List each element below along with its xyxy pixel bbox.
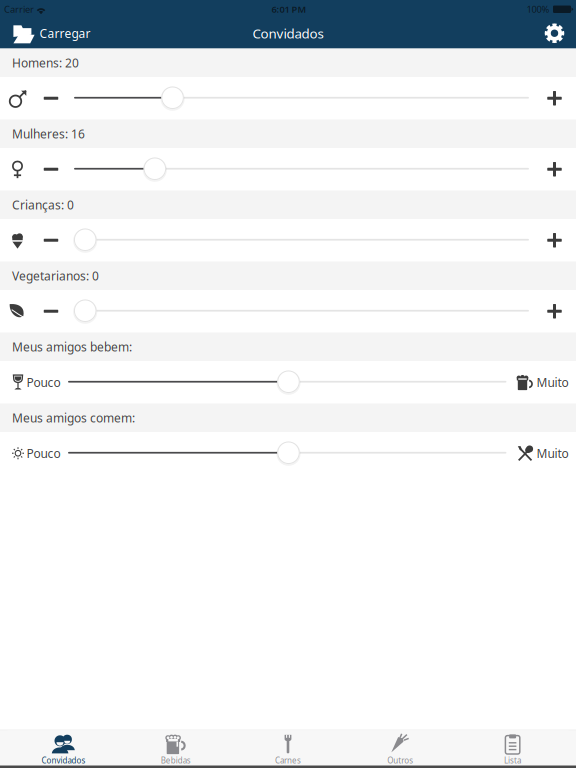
staticText: Meus amigos bebem: (12, 339, 132, 355)
staticText: 6:01 PM (271, 3, 306, 15)
button[interactable]: Decrease Vegetarianos (34, 294, 68, 328)
button[interactable]: Bebidas (119, 730, 232, 765)
button[interactable]: Lista (456, 730, 569, 765)
button[interactable]: Decrease Homens (34, 81, 68, 115)
staticText: 100% (526, 3, 549, 15)
button[interactable]: Increase Mulheres (537, 152, 571, 186)
staticText: Convidados (252, 24, 323, 42)
staticText: Bebidas (161, 755, 191, 766)
staticText: Mulheres: 16 (12, 126, 85, 142)
staticText: Lista (504, 755, 521, 766)
button[interactable]: Convidados (7, 730, 119, 765)
staticText: Outros (387, 755, 413, 766)
button[interactable]: Increase Crianças (537, 223, 571, 257)
staticText: Carrier (4, 3, 34, 15)
button[interactable]: Increase Homens (537, 81, 571, 115)
staticText: Vegetarianos: 0 (12, 268, 99, 284)
button[interactable]: Decrease Crianças (34, 223, 68, 257)
button[interactable]: Settings (537, 18, 571, 48)
button[interactable]: Carnes (232, 730, 344, 765)
staticText: Meus amigos comem: (12, 410, 135, 426)
staticText: Muito (536, 374, 568, 390)
staticText: Pouco (26, 445, 60, 461)
staticText: Carnes (275, 755, 301, 766)
staticText: Carregar (39, 25, 90, 41)
staticText: Muito (536, 445, 568, 461)
staticText: Crianças: 0 (12, 197, 74, 213)
button[interactable]: Outros (344, 730, 456, 765)
button[interactable]: Decrease Mulheres (34, 152, 68, 186)
button[interactable]: Increase Vegetarianos (537, 294, 571, 328)
staticText: Convidados (41, 755, 85, 766)
staticText: Pouco (26, 374, 60, 390)
button[interactable]: Carregar (0, 18, 100, 48)
staticText: Homens: 20 (12, 55, 79, 71)
